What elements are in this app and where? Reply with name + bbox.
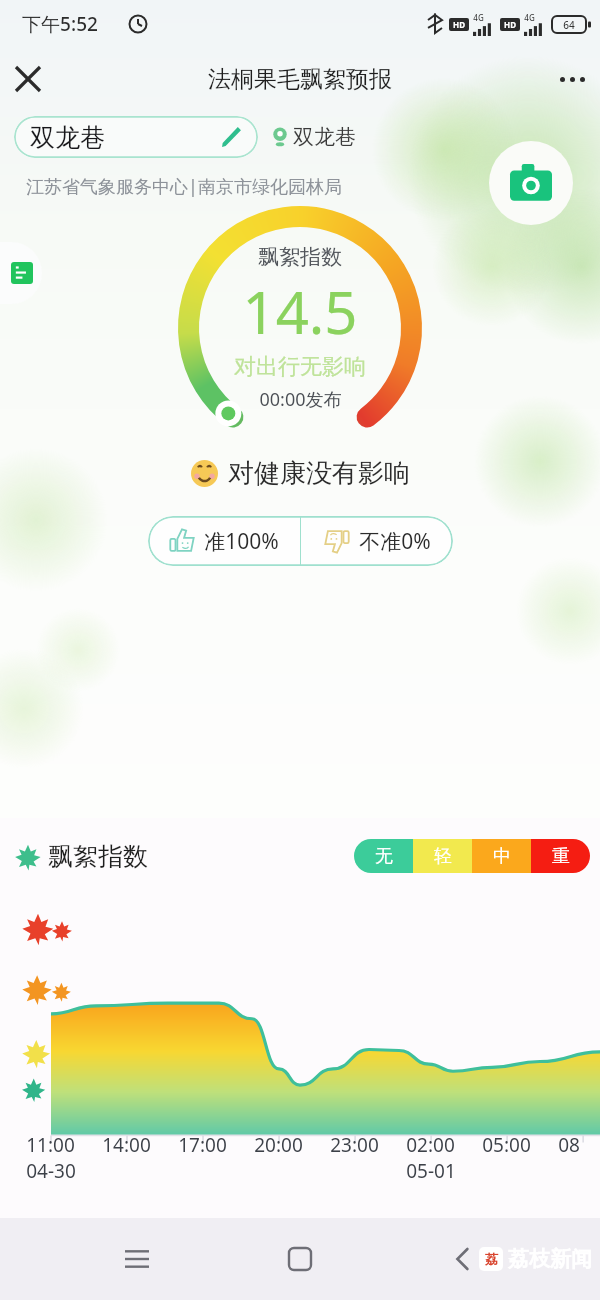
staticText: 中	[493, 845, 511, 868]
staticText: 17:00	[178, 1132, 227, 1158]
staticText: 05-01	[406, 1158, 456, 1184]
button[interactable]: 无	[354, 839, 413, 873]
staticText: 不准0%	[359, 527, 431, 556]
staticText: 11:00	[26, 1132, 75, 1158]
staticText: 02:00	[406, 1132, 455, 1158]
staticText: 05:00	[482, 1132, 531, 1158]
staticText: 00:00发布	[259, 387, 342, 412]
staticText: 荔枝新闻	[508, 1246, 592, 1272]
staticText: 双龙巷	[293, 124, 356, 150]
staticText: 4G	[524, 12, 535, 23]
button[interactable]: Back	[436, 1232, 490, 1286]
staticText: HD	[504, 19, 516, 30]
staticText: 23:00	[330, 1132, 379, 1158]
staticText: 08	[558, 1132, 580, 1158]
staticText: 14.5	[242, 272, 358, 351]
staticText: 荔	[485, 1251, 498, 1267]
button[interactable]: More options	[544, 51, 600, 107]
button[interactable]: Close	[0, 51, 56, 107]
button[interactable]: Recent apps	[110, 1232, 164, 1286]
staticText: 飘絮指数	[48, 841, 148, 872]
staticText: 轻	[434, 845, 452, 868]
staticText: 双龙巷	[30, 122, 105, 153]
staticText: 无	[375, 845, 393, 868]
staticText: 对健康没有影响	[228, 457, 410, 490]
button[interactable]: 报告	[0, 242, 42, 304]
staticText: HD	[453, 19, 465, 30]
staticText: 法桐果毛飘絮预报	[208, 65, 392, 94]
button[interactable]: 重	[531, 839, 590, 873]
staticText: 下午5:52	[22, 11, 98, 37]
staticText: 04-30	[26, 1158, 76, 1184]
button[interactable]: 不准0%	[301, 516, 453, 566]
staticText: 江苏省气象服务中心|南京市绿化园林局	[26, 174, 342, 199]
staticText: 重	[552, 845, 570, 868]
button[interactable]: Camera	[489, 141, 573, 225]
button[interactable]: 轻	[413, 839, 472, 873]
button[interactable]: 双龙巷	[14, 116, 258, 158]
staticText: 准100%	[204, 527, 279, 556]
button[interactable]: 中	[472, 839, 531, 873]
staticText: 飘絮指数	[258, 244, 342, 270]
staticText: 20:00	[254, 1132, 303, 1158]
staticText: 对出行无影响	[234, 353, 366, 381]
staticText: 64	[563, 18, 575, 32]
staticText: 4G	[473, 12, 484, 23]
button[interactable]: 准100%	[148, 516, 300, 566]
button[interactable]: Home	[273, 1232, 327, 1286]
staticText: 14:00	[102, 1132, 151, 1158]
